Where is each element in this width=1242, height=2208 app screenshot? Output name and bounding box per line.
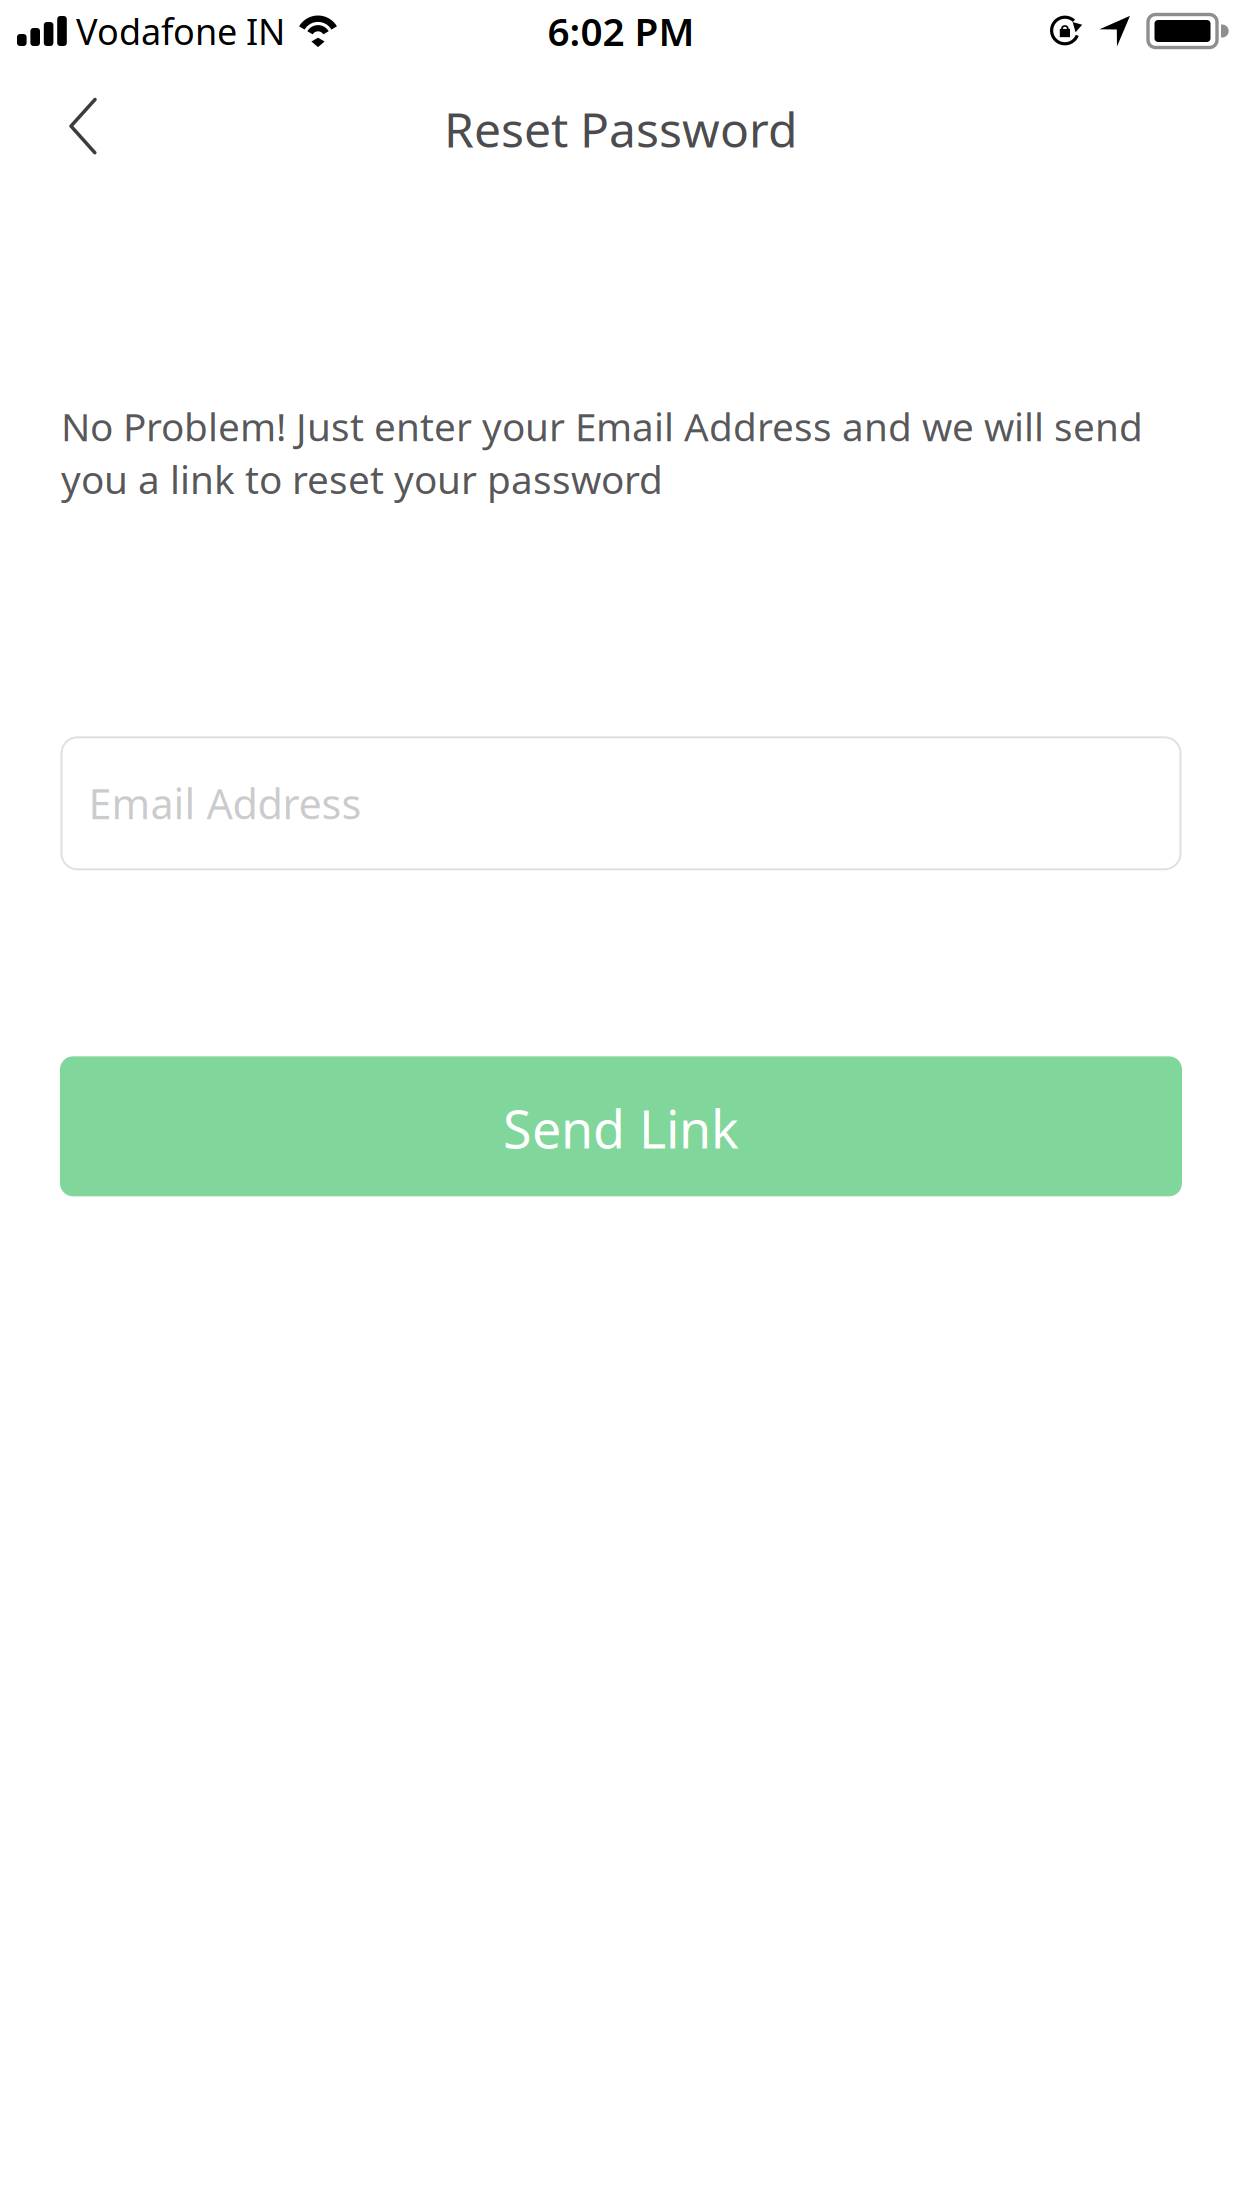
button[interactable]: Send Link (60, 1056, 1182, 1196)
staticText: No Problem! Just enter your Email Addres… (61, 400, 1143, 505)
staticText: Send Link (503, 1093, 739, 1164)
staticText: 6:02 PM (547, 5, 694, 57)
button[interactable]: Back (0, 62, 166, 190)
button[interactable]: Email Address (61, 737, 1180, 869)
staticText: Vodafone IN (76, 6, 285, 55)
staticText: Email Address (88, 775, 361, 831)
staticText: Reset Password (444, 96, 798, 162)
